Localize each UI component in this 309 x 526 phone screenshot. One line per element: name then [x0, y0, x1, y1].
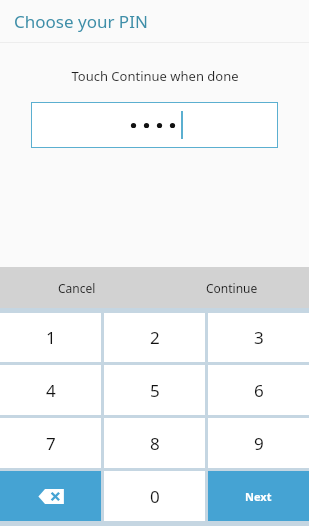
button[interactable]: 9 [208, 418, 309, 468]
staticText: 1 [46, 326, 56, 349]
staticText: 4 [46, 379, 56, 402]
button[interactable]: Backspace [0, 471, 101, 521]
staticText: Touch Continue when done [71, 67, 239, 85]
staticText: Next [245, 489, 272, 504]
button[interactable]: Continue [154, 267, 309, 308]
button[interactable]: 1 [0, 313, 101, 362]
staticText: Choose your PIN [14, 10, 148, 33]
staticText: 2 [150, 326, 160, 349]
staticText: 0 [150, 485, 160, 508]
staticText: 6 [254, 379, 264, 402]
staticText: Continue [206, 280, 258, 296]
staticText: 8 [150, 432, 160, 455]
staticText: 9 [254, 432, 264, 455]
staticText: 7 [46, 432, 56, 455]
button[interactable]: Cancel [0, 267, 154, 308]
button[interactable]: 3 [208, 313, 309, 362]
button[interactable]: Next [208, 471, 309, 521]
button[interactable]: 6 [208, 365, 309, 415]
staticText: 5 [150, 379, 160, 402]
button[interactable]: 2 [104, 313, 205, 362]
button[interactable]: 4 [0, 365, 101, 415]
staticText: 3 [254, 326, 264, 349]
button[interactable]: 7 [0, 418, 101, 468]
button[interactable]: 0 [104, 471, 205, 521]
button[interactable]: 8 [104, 418, 205, 468]
button[interactable] [31, 102, 278, 148]
button[interactable]: 5 [104, 365, 205, 415]
staticText: Cancel [58, 280, 96, 296]
